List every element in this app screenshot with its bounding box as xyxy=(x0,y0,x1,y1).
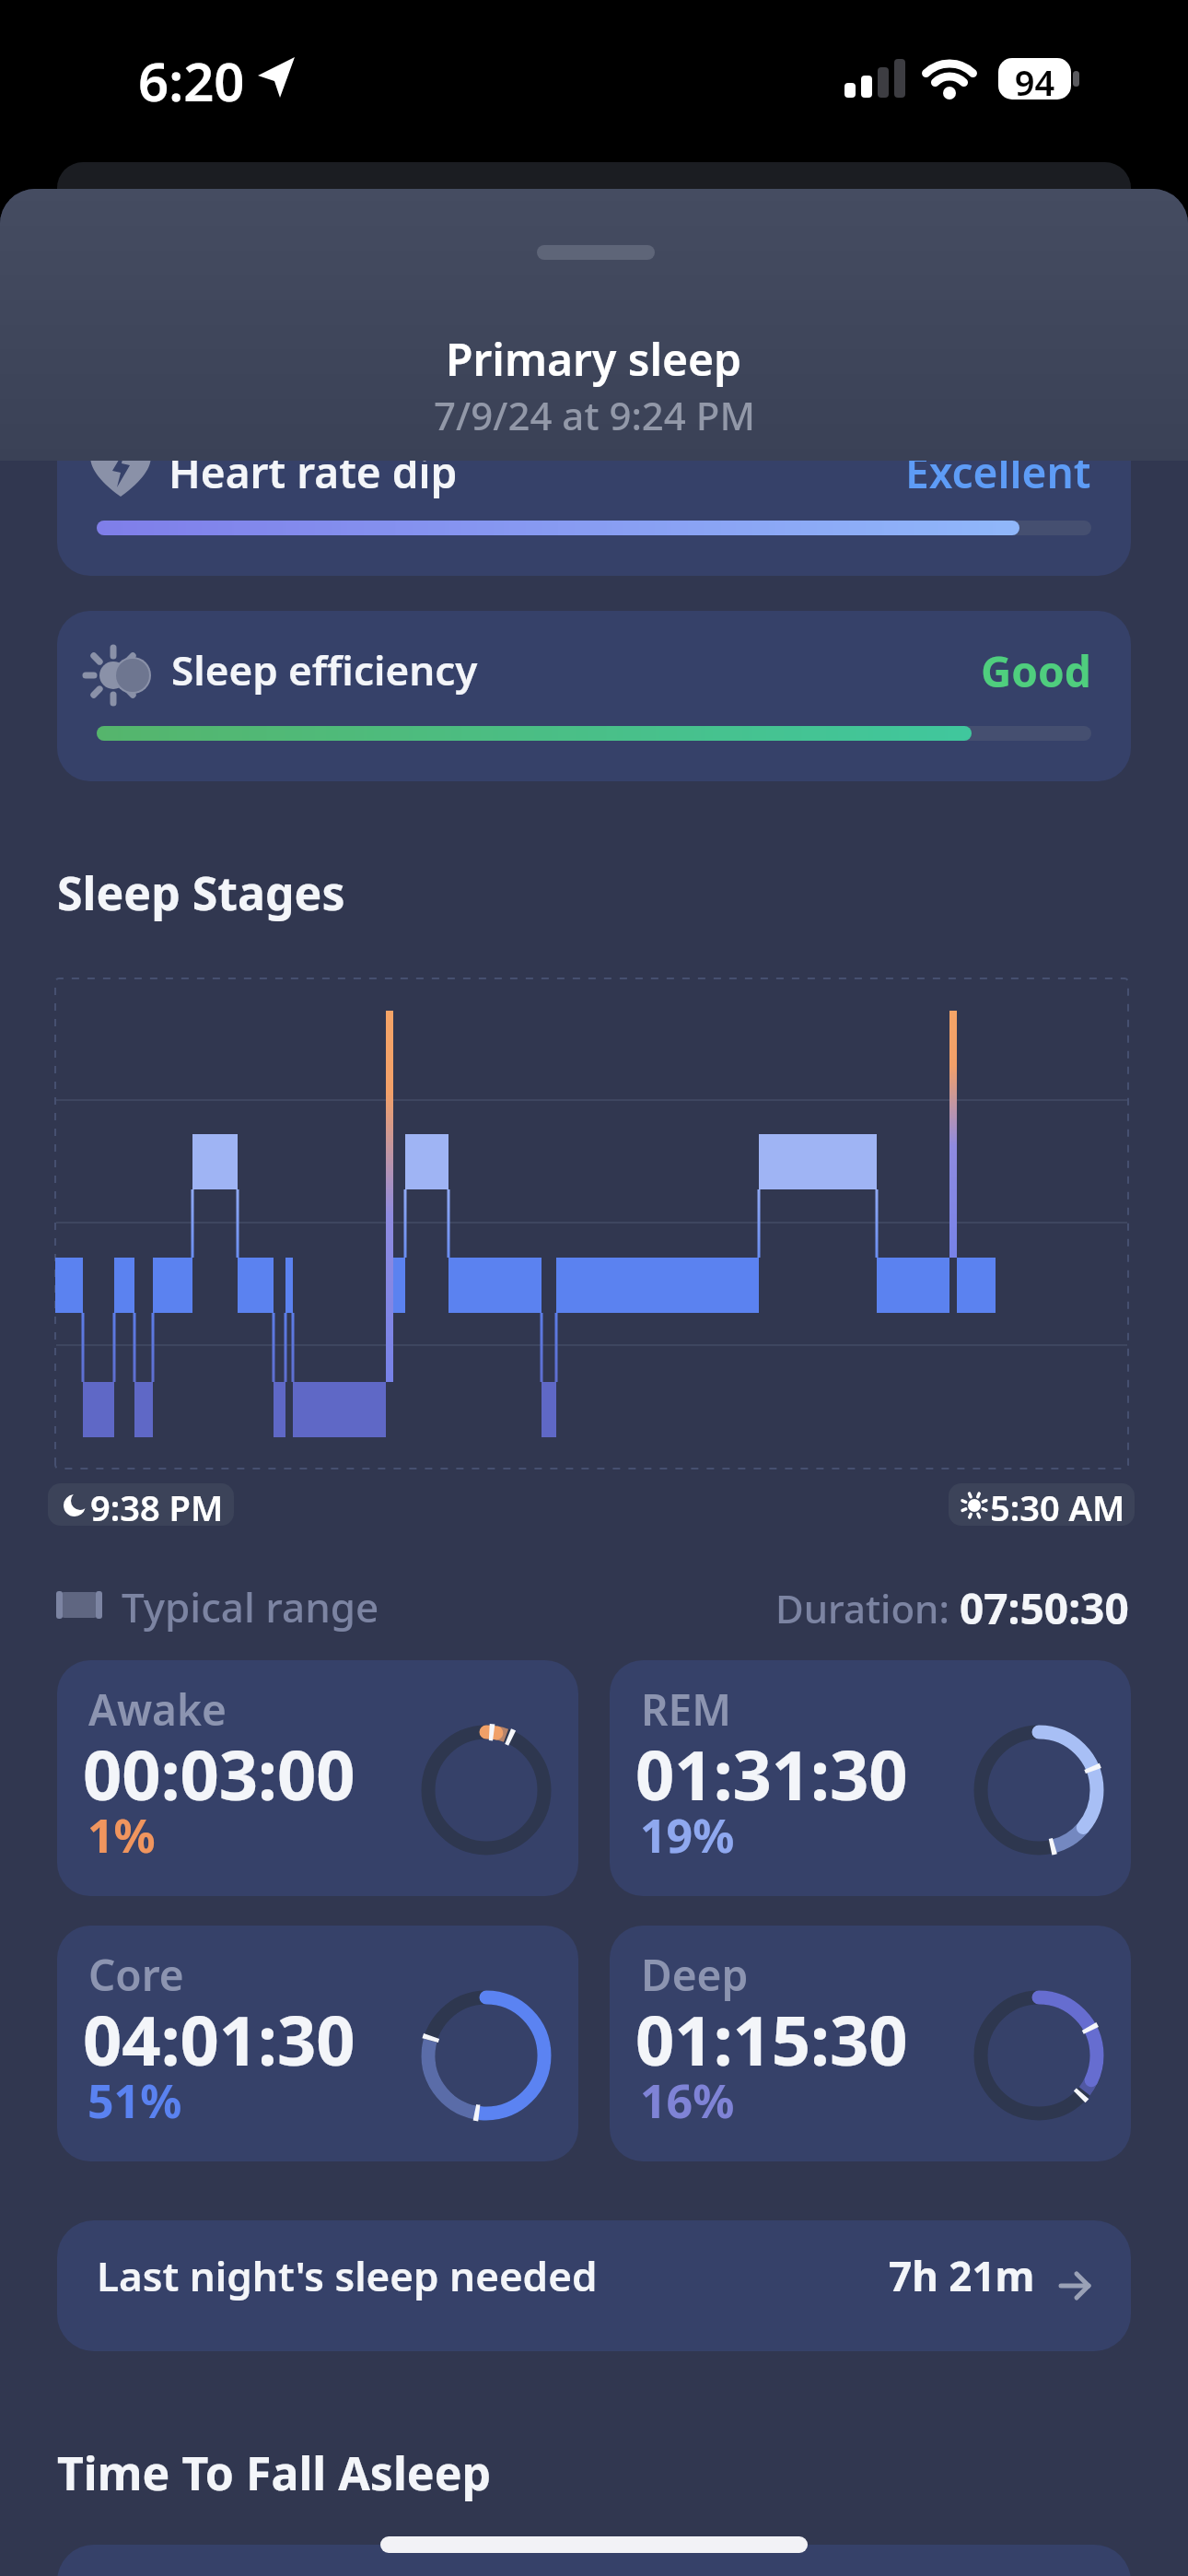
staticText: 04:01:30 xyxy=(83,1993,355,2086)
button[interactable] xyxy=(57,373,1131,576)
staticText: Awake xyxy=(88,1680,227,1739)
staticText: Duration: xyxy=(775,1582,960,1634)
button[interactable]: 9:38 PM xyxy=(48,1483,234,1526)
staticText: REM xyxy=(641,1680,731,1739)
staticText: Sleep efficiency xyxy=(171,642,478,697)
button[interactable]: Deep xyxy=(610,1926,1131,2161)
staticText: 94 xyxy=(998,58,1071,106)
staticText: Heart rate dip xyxy=(169,443,458,501)
staticText: Core xyxy=(88,1946,184,2004)
staticText: 7/9/24 at 9:24 PM xyxy=(434,389,755,441)
staticText: Typical range xyxy=(122,1579,379,1634)
button[interactable]: REM xyxy=(610,1660,1131,1896)
staticText: Sleep Stages xyxy=(57,861,345,924)
staticText: 01:31:30 xyxy=(635,1727,908,1821)
staticText: 16% xyxy=(640,2069,735,2132)
staticText: 00:03:00 xyxy=(83,1727,355,1821)
staticText: 51% xyxy=(87,2069,182,2132)
staticText: 19% xyxy=(640,1804,735,1867)
staticText: Last night's sleep needed xyxy=(97,2248,598,2303)
staticText: 07:50:30 xyxy=(960,1579,1129,1637)
staticText: 7h 21m xyxy=(889,2248,1035,2303)
staticText: Good xyxy=(981,642,1091,700)
button[interactable]: 5:30 AM xyxy=(949,1483,1135,1526)
staticText: 9:38 PM xyxy=(90,1483,224,1526)
button[interactable]: Core xyxy=(57,1926,578,2161)
staticText: Deep xyxy=(641,1946,749,2004)
button[interactable]: Awake xyxy=(57,1660,578,1896)
staticText: Excellent xyxy=(905,443,1091,501)
staticText: 1% xyxy=(87,1804,156,1867)
staticText: 5:30 AM xyxy=(990,1483,1125,1526)
staticText: Primary sleep xyxy=(446,329,742,389)
staticText: 01:15:30 xyxy=(635,1993,908,2086)
staticText: Time To Fall Asleep xyxy=(57,2441,492,2504)
button[interactable] xyxy=(57,2220,1131,2351)
button[interactable] xyxy=(57,611,1131,781)
staticText: 6:20 xyxy=(138,44,245,117)
